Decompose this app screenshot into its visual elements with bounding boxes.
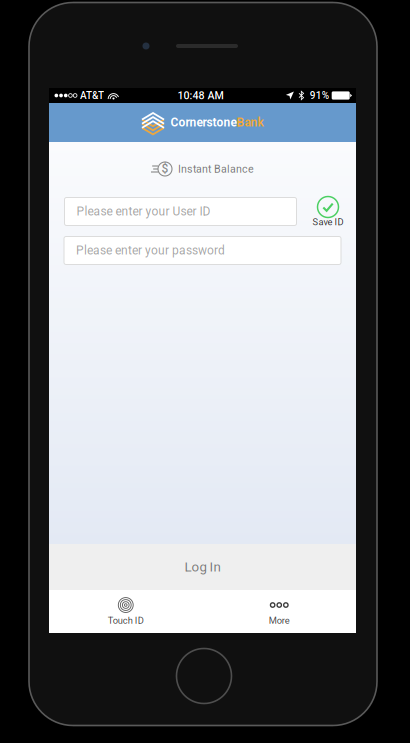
staticText: Cornerstone (170, 115, 236, 130)
staticText: Bank (236, 115, 263, 130)
button[interactable]: Please enter your User ID (64, 197, 296, 225)
button[interactable]: Save ID (311, 196, 345, 227)
staticText: 10:48 AM (177, 89, 223, 102)
staticText: Save ID (312, 216, 343, 227)
button[interactable]: Please enter your password (64, 236, 341, 264)
staticText: 91% (310, 90, 329, 101)
staticText: $ (161, 162, 168, 176)
staticText: Please enter your User ID (76, 204, 210, 219)
staticText: More (269, 615, 290, 626)
staticText: AT&T (80, 90, 104, 101)
staticText: Please enter your password (76, 243, 225, 258)
button[interactable]: Touch ID (49, 590, 202, 633)
staticText: Touch ID (108, 615, 144, 626)
staticText: Log In (184, 559, 220, 575)
staticText: Instant Balance (178, 163, 254, 175)
button[interactable]: More (202, 590, 356, 633)
button[interactable]: $ (49, 142, 356, 196)
